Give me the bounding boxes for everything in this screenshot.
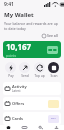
button[interactable]: 10,167 xyxy=(3,41,61,58)
staticText: See all xyxy=(47,33,58,38)
staticText: Send xyxy=(21,74,29,78)
button[interactable]: Shop xyxy=(32,125,48,130)
button[interactable]: See all xyxy=(40,32,60,39)
button[interactable]: Send xyxy=(18,61,31,79)
button[interactable]: Cards xyxy=(3,112,61,125)
button[interactable]: Home xyxy=(0,125,16,130)
button[interactable]: Top up xyxy=(33,61,46,79)
button[interactable]: Pay xyxy=(4,61,17,79)
staticText: Your balance and rewards are up to date … xyxy=(4,21,60,31)
button[interactable]: Me xyxy=(48,125,64,130)
staticText: Cards xyxy=(12,116,24,121)
staticText: points xyxy=(6,53,17,58)
button[interactable]: Cards xyxy=(16,125,32,130)
staticText: Offers xyxy=(12,101,25,106)
staticText: Activity xyxy=(12,84,27,89)
staticText: Scan xyxy=(50,74,58,78)
button[interactable]: Activity xyxy=(3,82,61,95)
button[interactable]: Scan xyxy=(47,61,60,79)
staticText: •••• xyxy=(51,117,56,121)
staticText: My Wallet xyxy=(4,11,34,19)
staticText: Pay xyxy=(8,74,14,78)
staticText: 9:41 xyxy=(4,1,14,8)
staticText: Top up xyxy=(34,74,45,78)
staticText: 10,167 xyxy=(6,41,32,52)
staticText: Latest xyxy=(12,89,21,93)
button[interactable]: Offers xyxy=(3,97,61,110)
